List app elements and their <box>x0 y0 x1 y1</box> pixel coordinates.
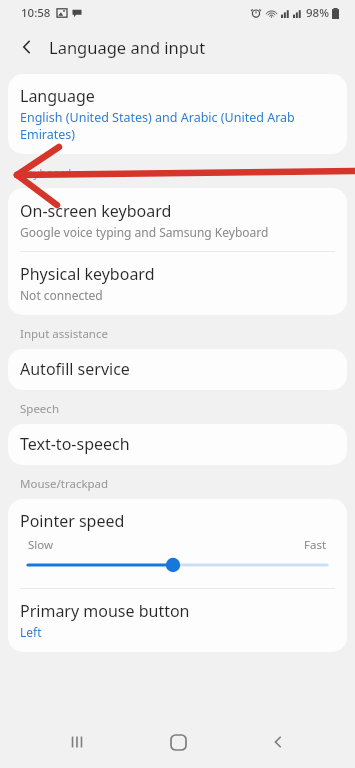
staticText: Text-to-speech <box>20 433 130 455</box>
button[interactable]: Primary mouse button <box>8 589 347 652</box>
staticText: Keyboards <box>20 165 77 181</box>
button[interactable]: Recents <box>53 718 101 766</box>
staticText: 98% <box>306 5 329 21</box>
staticText: Language <box>20 85 95 107</box>
staticText: English (United States) and Arabic (Unit… <box>20 109 335 143</box>
staticText: On-screen keyboard <box>20 200 172 222</box>
staticText: Pointer speed <box>20 510 125 532</box>
staticText: Left <box>20 624 42 640</box>
staticText: Language and input <box>49 36 206 58</box>
button[interactable]: Autofill service <box>8 349 347 390</box>
button[interactable]: Back <box>10 30 44 64</box>
staticText: Google voice typing and Samsung Keyboard <box>20 224 269 240</box>
staticText: Mouse/trackpad <box>20 476 109 492</box>
button[interactable]: Language <box>8 74 347 154</box>
staticText: Input assistance <box>20 326 108 342</box>
button[interactable]: Text-to-speech <box>8 424 347 465</box>
staticText: Speech <box>20 401 59 417</box>
staticText: Fast <box>304 537 327 553</box>
staticText: Not connected <box>20 287 103 303</box>
staticText: Slow <box>28 537 54 553</box>
button[interactable]: On-screen keyboard <box>8 188 347 251</box>
staticText: Physical keyboard <box>20 263 155 285</box>
staticText: 10:58 <box>21 5 51 21</box>
button[interactable]: Physical keyboard <box>8 252 347 315</box>
staticText: Autofill service <box>20 358 130 380</box>
button[interactable]: Back <box>254 718 302 766</box>
button[interactable]: Pointer speed <box>8 499 347 588</box>
staticText: Primary mouse button <box>20 600 190 622</box>
button[interactable]: Home <box>154 718 202 766</box>
